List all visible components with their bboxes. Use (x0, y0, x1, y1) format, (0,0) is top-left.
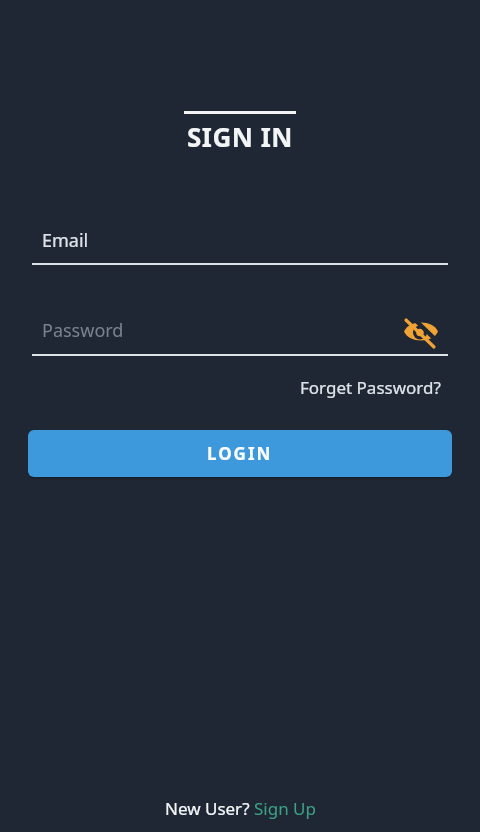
staticText: Forget Password? (300, 376, 441, 399)
button[interactable]: Email (32, 220, 448, 265)
button[interactable] (404, 315, 438, 348)
staticText: LOGIN (207, 442, 273, 465)
button[interactable]: LOGIN (28, 430, 452, 477)
button[interactable]: Sign Up (254, 797, 316, 820)
staticText: SIGN IN (187, 119, 293, 154)
button[interactable]: Forget Password? (296, 372, 445, 403)
button[interactable]: Password (32, 311, 448, 355)
staticText: New User? (165, 797, 254, 820)
staticText: Email (42, 228, 89, 253)
staticText: Password (42, 318, 124, 343)
staticText: Sign Up (254, 797, 316, 820)
